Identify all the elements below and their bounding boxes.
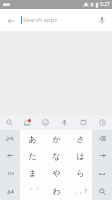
button[interactable]: た	[20, 147, 44, 164]
button[interactable]: 、。?	[68, 182, 92, 200]
button[interactable]: な	[44, 147, 68, 164]
staticText: ま	[28, 168, 37, 178]
button[interactable]: 123	[0, 164, 20, 182]
button[interactable]: ま	[20, 164, 44, 182]
button[interactable]: Search	[0, 115, 18, 130]
button[interactable]: Back	[0, 9, 112, 31]
staticText: た	[28, 151, 37, 161]
staticText: さ	[76, 134, 85, 144]
button[interactable]: ゛゜	[20, 182, 44, 200]
button[interactable]: Search	[92, 182, 112, 200]
staticText: は	[76, 151, 85, 161]
button[interactable]: Stickers	[18, 115, 36, 130]
button[interactable]: Voice input	[55, 115, 74, 130]
button[interactable]: Change input mode	[0, 182, 20, 200]
staticText: あA	[7, 189, 14, 194]
staticText: や	[52, 168, 61, 178]
staticText: か	[52, 134, 61, 144]
staticText: あ	[28, 134, 37, 144]
button[interactable]: や	[44, 164, 68, 182]
button[interactable]: Clipboard	[74, 115, 93, 130]
staticText: 記号	[6, 136, 14, 141]
button[interactable]: Back	[4, 14, 17, 27]
button[interactable]: さ	[68, 130, 92, 147]
button[interactable]: 記号	[0, 130, 20, 147]
staticText: な	[52, 151, 61, 161]
staticText: わ	[52, 186, 61, 196]
button[interactable]: Emoji	[36, 115, 55, 130]
staticText: Search apps	[23, 16, 58, 24]
button[interactable]: Settings	[93, 115, 112, 130]
staticText: ゛゜	[26, 187, 39, 195]
button[interactable]: Move cursor right	[92, 147, 112, 164]
staticText: 、。?	[74, 188, 87, 195]
button[interactable]: か	[44, 130, 68, 147]
button[interactable]: Space	[92, 164, 112, 182]
button[interactable]: Move cursor left	[0, 147, 20, 164]
button[interactable]: ら	[68, 164, 92, 182]
button[interactable]: Backspace	[92, 130, 112, 147]
button[interactable]: わ	[44, 182, 68, 200]
staticText: 5:27	[100, 1, 110, 8]
button[interactable]: は	[68, 147, 92, 164]
button[interactable]: あ	[20, 130, 44, 147]
button[interactable]: Voice search	[95, 13, 109, 27]
staticText: 123	[7, 171, 14, 176]
staticText: ら	[76, 168, 85, 178]
